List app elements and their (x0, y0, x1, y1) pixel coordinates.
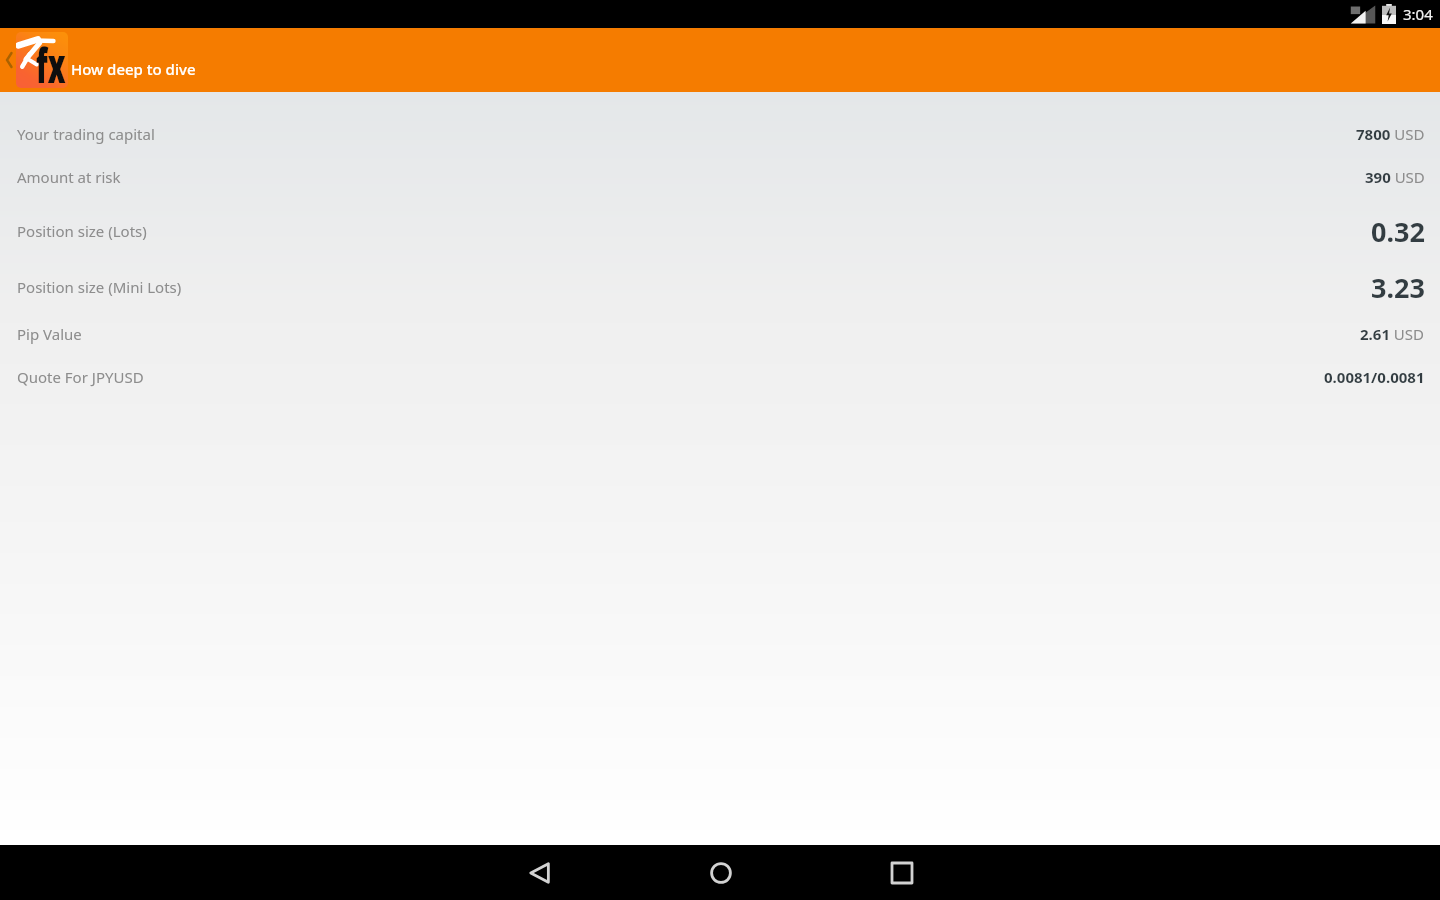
staticText: How deep to dive (71, 59, 196, 79)
staticText: 390 USD (1365, 167, 1425, 187)
button[interactable]: Position size (Lots) (0, 203, 1440, 259)
button[interactable]: Recent apps (862, 845, 942, 900)
staticText: 3.23 (1371, 269, 1425, 306)
button[interactable]: Your trading capital (0, 112, 1440, 156)
staticText: Your trading capital (17, 124, 155, 144)
button[interactable]: Pip Value (0, 312, 1440, 356)
button[interactable]: Position size (Mini Lots) (0, 259, 1440, 315)
staticText: Pip Value (17, 324, 82, 344)
staticText: Position size (Lots) (17, 221, 147, 241)
button[interactable]: Back (498, 845, 578, 900)
staticText: 2.61 USD (1360, 324, 1425, 344)
staticText: Position size (Mini Lots) (17, 277, 182, 297)
button[interactable]: Navigate up (0, 38, 19, 82)
staticText: Quote For JPYUSD (17, 367, 144, 387)
button[interactable]: Quote For JPYUSD (0, 355, 1440, 399)
staticText: 0.0081/0.0081 (1324, 367, 1425, 387)
staticText: 3:04 (1403, 4, 1433, 24)
staticText: 0.32 (1371, 213, 1425, 250)
staticText: Amount at risk (17, 167, 121, 187)
staticText: fx (36, 33, 66, 88)
staticText: 7800 USD (1356, 124, 1425, 144)
button[interactable]: Home (680, 845, 760, 900)
button[interactable]: fx (16, 32, 196, 88)
button[interactable]: Amount at risk (0, 155, 1440, 199)
